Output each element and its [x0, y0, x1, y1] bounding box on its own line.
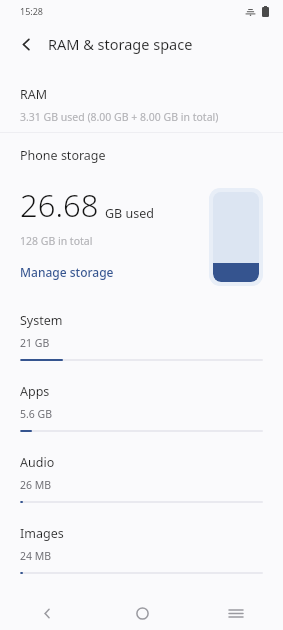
- staticText: 21 GB: [20, 336, 50, 350]
- button[interactable]: Manage storage: [20, 264, 114, 280]
- staticText: GB used: [105, 205, 154, 222]
- staticText: RAM: [20, 86, 48, 103]
- staticText: Images: [20, 525, 64, 542]
- staticText: 24 MB: [20, 549, 52, 563]
- button[interactable]: Apps: [0, 383, 283, 454]
- button[interactable]: Home: [95, 596, 189, 630]
- staticText: 15:28: [20, 5, 44, 17]
- button[interactable]: Back: [8, 26, 44, 62]
- staticText: 5.6 GB: [20, 407, 53, 421]
- button[interactable]: System: [0, 312, 283, 383]
- button[interactable]: Audio: [0, 454, 283, 525]
- staticText: 26 MB: [20, 478, 52, 492]
- staticText: Audio: [20, 454, 55, 471]
- button[interactable]: RAM: [0, 84, 283, 126]
- staticText: 26.68: [20, 184, 99, 226]
- button[interactable]: Back: [0, 596, 95, 630]
- staticText: 128 GB in total: [20, 234, 93, 248]
- button[interactable]: Recent apps: [189, 596, 283, 630]
- staticText: Apps: [20, 383, 50, 400]
- staticText: RAM & storage space: [48, 34, 193, 54]
- staticText: 3.31 GB used (8.00 GB + 8.00 GB in total…: [20, 110, 219, 124]
- staticText: System: [20, 312, 63, 329]
- staticText: Phone storage: [20, 147, 106, 164]
- staticText: Manage storage: [20, 264, 114, 280]
- button[interactable]: Images: [0, 525, 283, 596]
